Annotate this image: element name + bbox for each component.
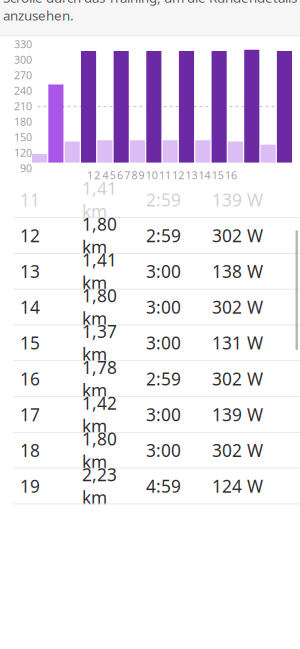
staticText: 330 — [14, 37, 32, 51]
staticText: 1,80 km — [82, 427, 117, 473]
staticText: 90 — [20, 161, 32, 175]
staticText: 302 W — [212, 367, 263, 390]
staticText: 3:00 — [146, 331, 181, 354]
staticText: 138 W — [212, 260, 263, 283]
staticText: 8 — [131, 168, 137, 182]
staticText: 270 — [14, 68, 32, 82]
button[interactable]: 12 — [0, 218, 300, 254]
staticText: 139 W — [212, 188, 263, 211]
staticText: 12 — [20, 224, 40, 247]
staticText: 300 — [14, 53, 32, 67]
staticText: 3:00 — [146, 296, 181, 319]
staticText: 1,80 km — [82, 284, 117, 330]
staticText: 302 W — [212, 224, 263, 247]
staticText: 139 W — [212, 403, 263, 426]
staticText: 124 W — [212, 475, 263, 498]
button[interactable]: 16 — [0, 361, 300, 397]
button[interactable]: 11 — [0, 182, 300, 218]
staticText: 14 — [199, 168, 211, 182]
staticText: 17 — [20, 403, 40, 426]
staticText: 150 — [14, 130, 32, 144]
staticText: 1,78 km — [82, 356, 117, 402]
staticText: 6 — [117, 168, 123, 182]
button[interactable]: 19 — [0, 469, 300, 504]
staticText: 3:00 — [146, 439, 181, 462]
staticText: 1,37 km — [82, 320, 117, 366]
staticText: 13 — [20, 260, 40, 283]
staticText: 13 — [185, 168, 197, 182]
staticText: 11 — [20, 188, 40, 211]
staticText: 120 — [14, 146, 32, 160]
button[interactable]: 13 — [0, 254, 300, 290]
staticText: 18 — [20, 439, 40, 462]
button[interactable]: 14 — [0, 290, 300, 325]
button[interactable]: 15 — [0, 325, 300, 361]
staticText: 12 — [172, 168, 184, 182]
staticText: 302 W — [212, 439, 263, 462]
staticText: Scrolle durch das Training, um die Runde… — [3, 0, 297, 24]
staticText: 302 W — [212, 296, 263, 319]
staticText: 19 — [20, 475, 40, 498]
staticText: 2:59 — [146, 367, 181, 390]
staticText: 240 — [14, 84, 32, 98]
staticText: 11 — [159, 168, 171, 182]
staticText: 16 — [20, 367, 40, 390]
staticText: 4 — [103, 168, 109, 182]
staticText: 2:59 — [146, 224, 181, 247]
staticText: 16 — [225, 168, 237, 182]
staticText: 1,41 km — [82, 248, 117, 294]
staticText: 15 — [20, 331, 40, 354]
staticText: 9 — [139, 168, 145, 182]
staticText: 1,80 km — [82, 212, 117, 258]
staticText: 1,41 km — [82, 177, 117, 223]
staticText: 2,23 km — [82, 463, 117, 509]
button[interactable]: 17 — [0, 397, 300, 433]
staticText: 5 — [110, 168, 116, 182]
staticText: 3:00 — [146, 403, 181, 426]
staticText: 210 — [14, 99, 32, 113]
staticText: 2:59 — [146, 188, 181, 211]
staticText: 10 — [146, 168, 158, 182]
staticText: 4:59 — [146, 475, 181, 498]
staticText: 1,42 km — [82, 391, 117, 437]
staticText: 15 — [212, 168, 224, 182]
staticText: 180 — [14, 115, 32, 129]
staticText: 3:00 — [146, 260, 181, 283]
staticText: 1 — [87, 168, 93, 182]
button[interactable]: 18 — [0, 433, 300, 469]
staticText: 131 W — [212, 331, 263, 354]
staticText: 14 — [20, 296, 40, 319]
staticText: 7 — [124, 168, 130, 182]
staticText: 2 — [94, 168, 100, 182]
